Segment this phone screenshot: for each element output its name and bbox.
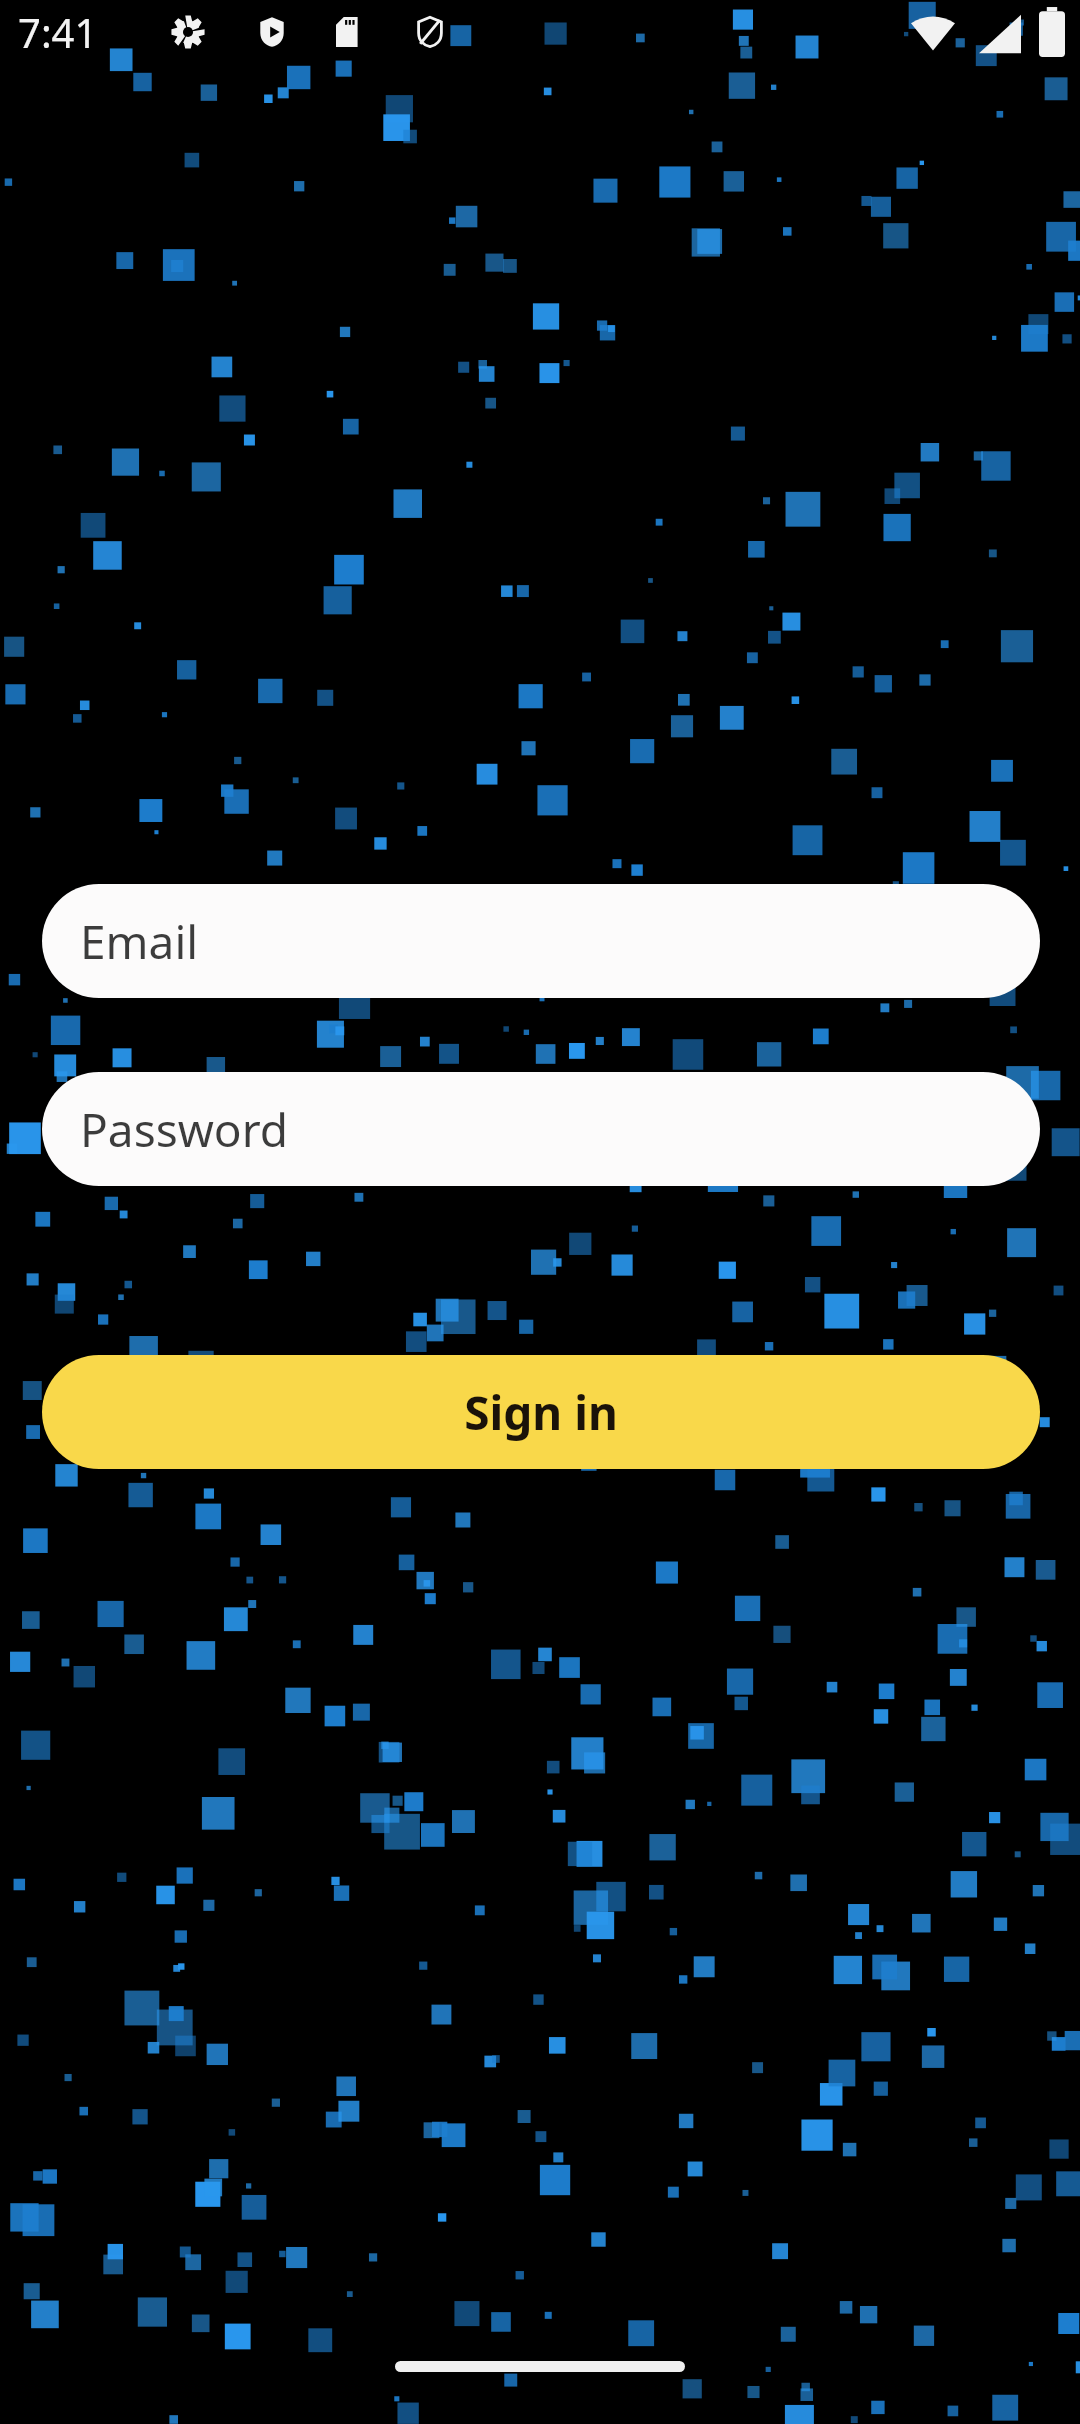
other: Sign in — [42, 1355, 1040, 1469]
staticText: Password — [80, 1098, 289, 1161]
staticText: Email — [80, 910, 199, 973]
button[interactable]: Email — [42, 884, 1040, 998]
button[interactable]: Password — [42, 1072, 1040, 1186]
button[interactable]: Sign in — [42, 1355, 1040, 1469]
staticText: 7:41 — [18, 5, 98, 59]
staticText: Sign in — [464, 1381, 618, 1444]
